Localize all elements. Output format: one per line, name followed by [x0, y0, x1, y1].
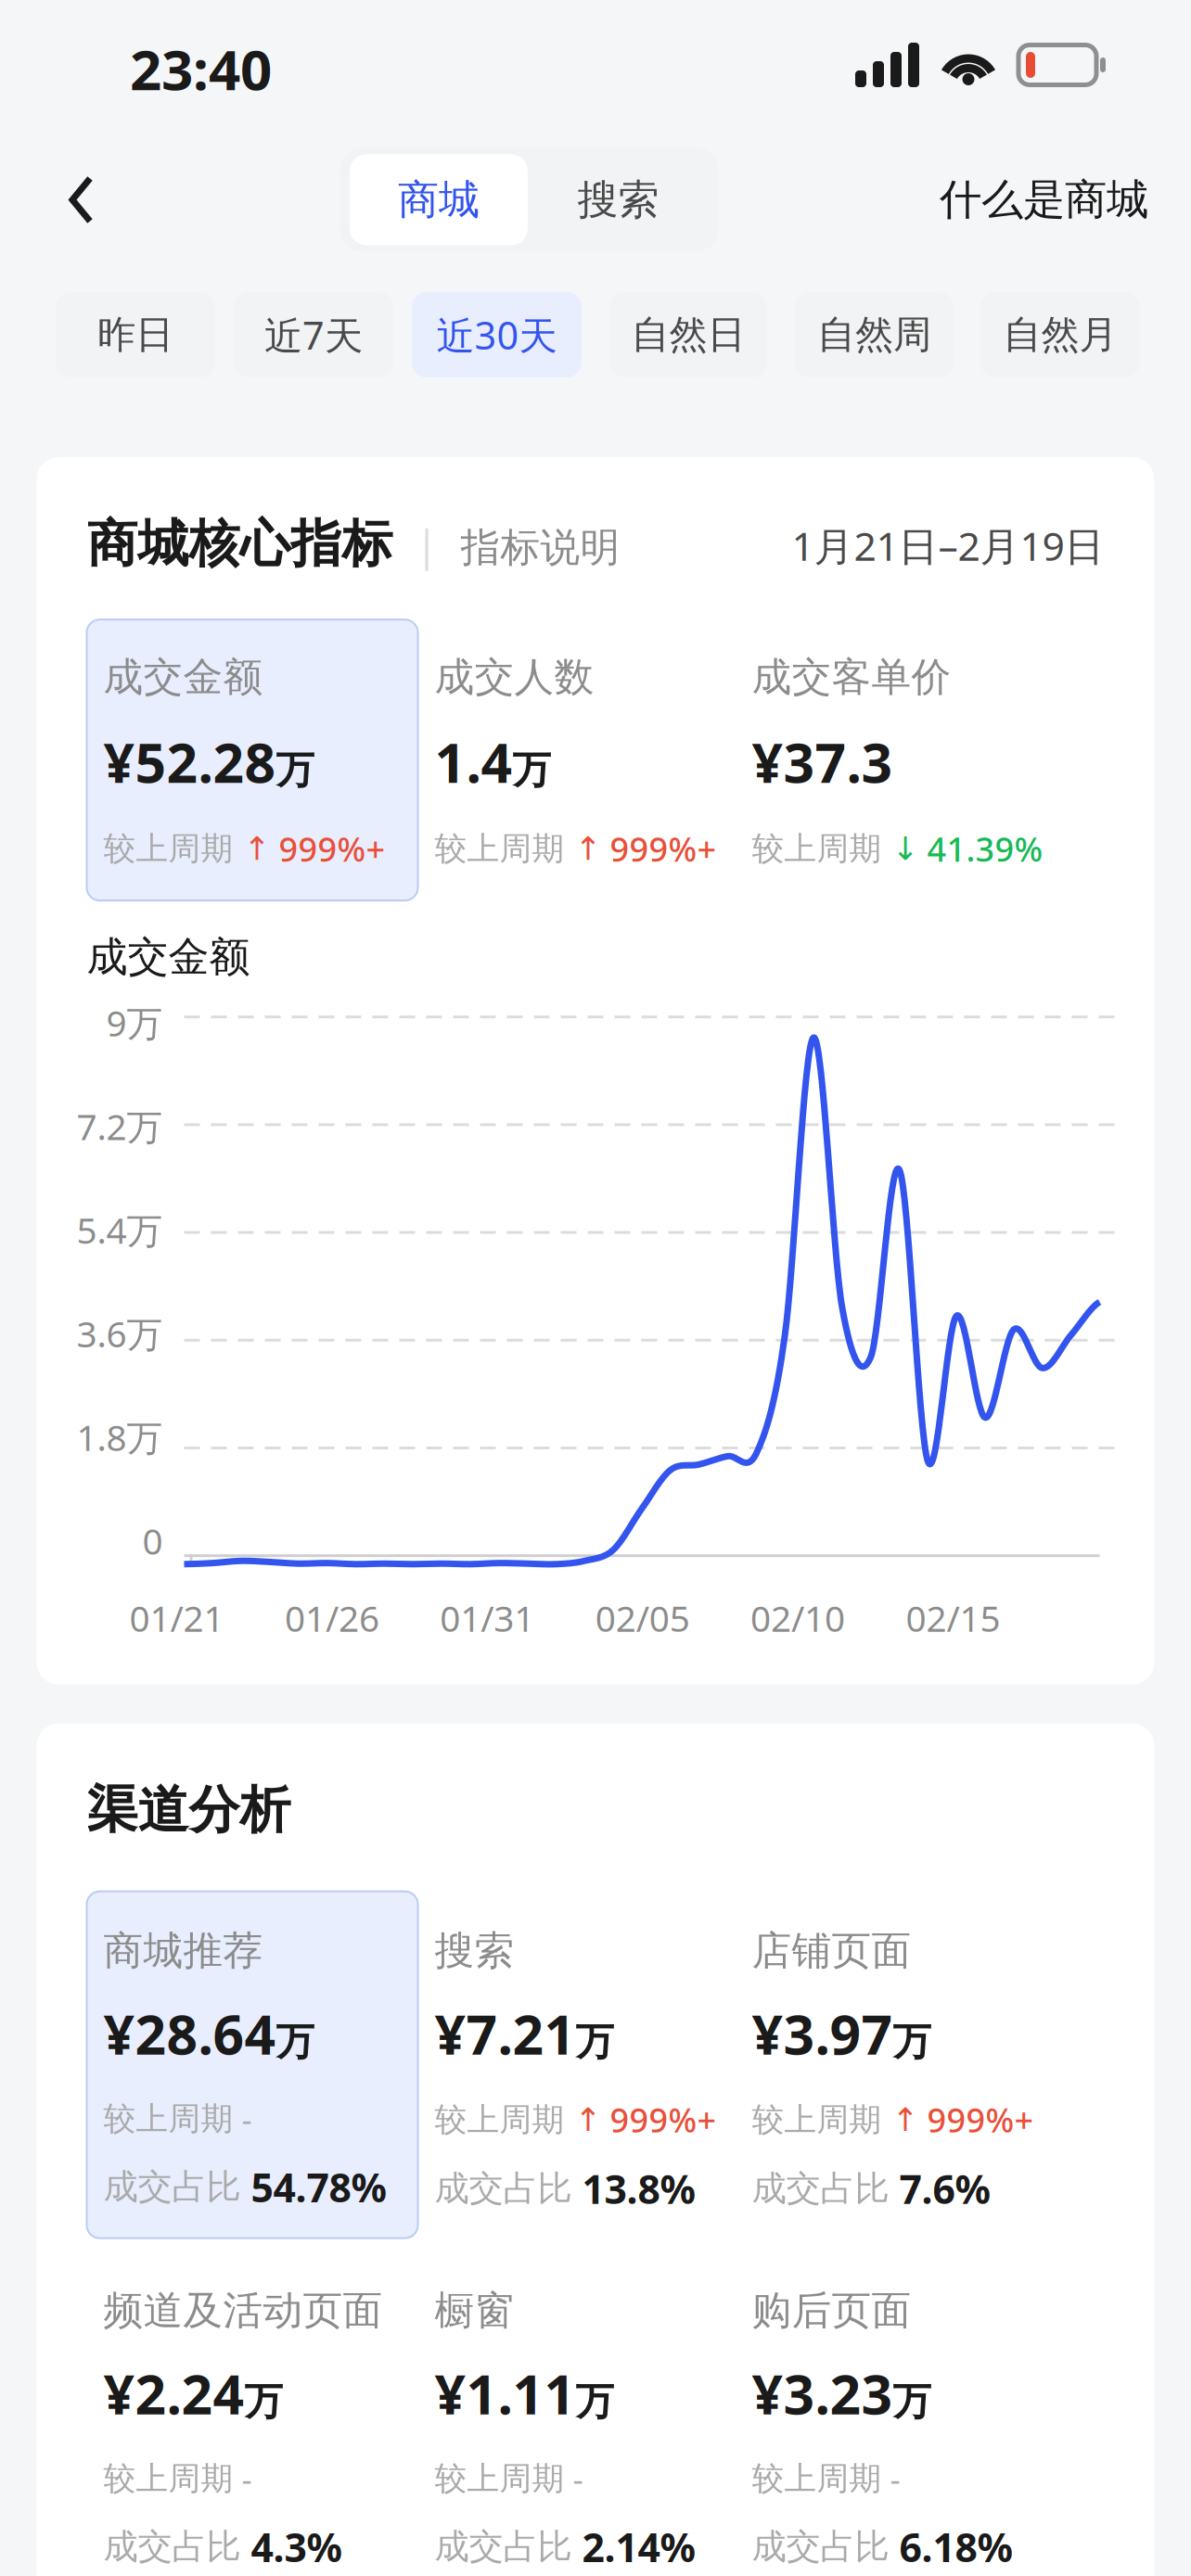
staticText: 3.6万	[77, 1310, 163, 1357]
staticText: 1月21日–2月19日	[792, 519, 1104, 572]
staticText: 成交客单价	[752, 653, 951, 701]
staticText: 指标说明	[461, 523, 620, 572]
staticText: 成交占比	[435, 2525, 582, 2568]
staticText: -	[882, 2457, 900, 2500]
staticText: ↑	[564, 2101, 602, 2138]
staticText: 0	[142, 1517, 163, 1564]
staticText: 店铺页面	[752, 1927, 911, 1975]
staticText: 商城推荐	[103, 1927, 263, 1975]
staticText: 搜索	[577, 175, 659, 225]
staticText: 较上周期	[103, 829, 233, 868]
staticText: 近7天	[264, 309, 363, 360]
staticText: 购后页面	[752, 2286, 911, 2335]
staticText: 成交金额	[103, 653, 263, 701]
button[interactable]: 搜索	[418, 1891, 735, 2238]
staticText: |	[393, 517, 461, 572]
staticText: 成交占比	[103, 2525, 251, 2568]
staticText: 近30天	[436, 309, 557, 360]
staticText: 02/10	[750, 1594, 845, 1642]
staticText: 成交占比	[752, 2167, 899, 2210]
button[interactable]: Back	[45, 158, 119, 242]
staticText: 7.2万	[77, 1102, 163, 1150]
staticText: 7.6%	[899, 2162, 990, 2215]
staticText: 万	[276, 2018, 314, 2066]
staticText: ¥7.21	[435, 1997, 576, 2070]
staticText: -	[233, 2098, 252, 2140]
button[interactable]: 自然月	[980, 292, 1140, 377]
staticText: 4.3%	[251, 2520, 342, 2573]
staticText: 成交金额	[87, 932, 250, 982]
button[interactable]: 自然日	[609, 292, 767, 377]
staticText: 2.14%	[582, 2520, 695, 2573]
staticText: 自然日	[631, 311, 745, 358]
staticText: 渠道分析	[87, 1779, 291, 1841]
staticText: 什么是商城	[940, 174, 1148, 226]
staticText: 万	[576, 2378, 614, 2425]
staticText: 较上周期	[103, 2099, 233, 2139]
staticText: 13.8%	[582, 2162, 695, 2215]
staticText: 较上周期	[752, 2459, 882, 2498]
staticText: ¥52.28	[103, 726, 276, 798]
button[interactable]: 昨日	[56, 292, 215, 377]
staticText: 999%+	[270, 826, 385, 871]
staticText: 5.4万	[77, 1206, 163, 1254]
staticText: 01/31	[440, 1594, 535, 1642]
staticText: 较上周期	[103, 2459, 233, 2498]
staticText: -	[233, 2457, 252, 2500]
button[interactable]: 搜索	[528, 154, 709, 245]
staticText: 频道及活动页面	[103, 2286, 383, 2335]
staticText: 999%+	[602, 2098, 717, 2142]
staticText: 昨日	[97, 311, 173, 358]
staticText: 万	[893, 2378, 931, 2425]
button[interactable]: 店铺页面	[735, 1891, 1052, 2238]
button[interactable]: 近30天	[412, 292, 582, 377]
staticText: ¥3.97	[752, 1997, 893, 2070]
button[interactable]: 商城	[350, 154, 528, 245]
staticText: 商城核心指标	[87, 513, 393, 575]
staticText: 万	[512, 747, 551, 794]
button[interactable]: 购后页面	[735, 2251, 1052, 2576]
staticText: 万	[893, 2018, 931, 2066]
staticText: 1.4	[435, 726, 512, 798]
staticText: 较上周期	[752, 829, 882, 868]
staticText: ↓	[882, 830, 919, 867]
staticText: 999%+	[602, 826, 717, 871]
button[interactable]: 什么是商城	[940, 158, 1148, 242]
staticText: 02/15	[906, 1594, 1000, 1642]
staticText: 成交占比	[103, 2166, 251, 2208]
staticText: 橱窗	[435, 2286, 514, 2335]
staticText: 较上周期	[435, 2100, 564, 2139]
staticText: 自然周	[817, 311, 931, 358]
staticText: 较上周期	[435, 829, 564, 868]
button[interactable]: 商城推荐	[87, 1891, 418, 2238]
button[interactable]: 近7天	[234, 292, 393, 377]
staticText: ↑	[882, 2101, 919, 2138]
button[interactable]: 自然周	[795, 292, 954, 377]
staticText: ↑	[233, 830, 270, 867]
staticText: 02/05	[595, 1594, 690, 1642]
staticText: 万	[576, 2018, 614, 2066]
staticText: -	[564, 2457, 583, 2500]
staticText: ¥3.23	[752, 2357, 893, 2429]
staticText: 6.18%	[899, 2520, 1012, 2573]
staticText: 54.78%	[251, 2161, 386, 2213]
staticText: 9万	[106, 999, 163, 1046]
button[interactable]: 橱窗	[418, 2251, 735, 2576]
staticText: 23:40	[130, 32, 272, 106]
staticText: ¥28.64	[103, 1997, 276, 2070]
staticText: 成交占比	[752, 2525, 899, 2568]
staticText: 较上周期	[435, 2459, 564, 2498]
staticText: 01/26	[285, 1594, 379, 1642]
staticText: 万	[244, 2378, 282, 2425]
staticText: 成交占比	[435, 2167, 582, 2210]
staticText: 01/21	[129, 1594, 224, 1642]
staticText: 自然月	[1003, 311, 1117, 358]
staticText: 较上周期	[752, 2100, 882, 2139]
staticText: 999%+	[919, 2098, 1034, 2142]
button[interactable]: 指标说明	[461, 523, 620, 572]
staticText: ↑	[564, 830, 602, 867]
staticText: 成交人数	[435, 653, 594, 701]
staticText: 万	[276, 747, 314, 794]
staticText: ¥1.11	[435, 2357, 576, 2429]
button[interactable]: 频道及活动页面	[87, 2251, 418, 2576]
